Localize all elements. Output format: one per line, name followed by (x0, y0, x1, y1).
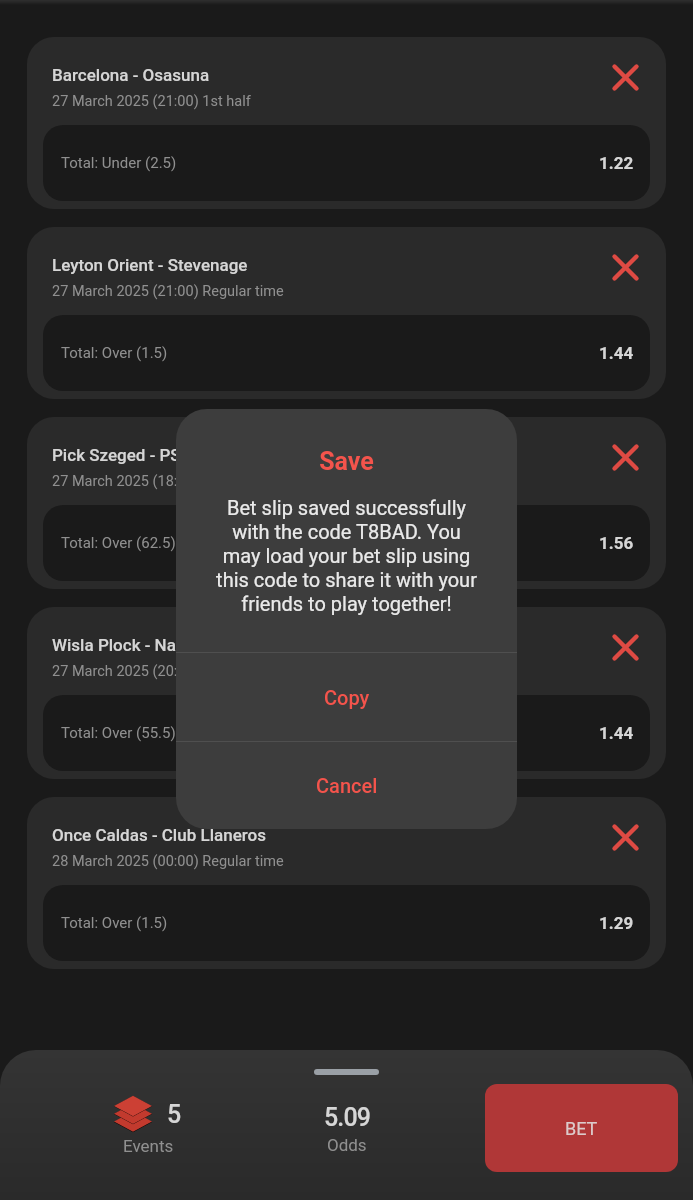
button[interactable]: Wisla Plock - Nantes (27, 607, 666, 779)
staticText: 5.09 (324, 1103, 371, 1132)
button[interactable]: Barcelona - Osasuna (27, 37, 666, 209)
staticText: 1.29 (599, 913, 634, 933)
button[interactable]: Remove bet (603, 625, 647, 669)
staticText: Events (123, 1136, 174, 1156)
staticText: 1.22 (599, 153, 634, 173)
staticText: 28 March 2025 (00:00) Regular time (52, 853, 284, 870)
staticText: 1.44 (599, 723, 634, 743)
staticText: Once Caldas - Club Llaneros (52, 825, 266, 845)
button[interactable]: Total: Over (1.5) (43, 885, 650, 961)
staticText: Bet slip saved successfully with the cod… (214, 496, 479, 616)
button[interactable]: Leyton Orient - Stevenage (27, 227, 666, 399)
staticText: Total: Over (62.5) (61, 534, 176, 552)
staticText: 27 March 2025 (21:00) 1st half (52, 93, 251, 110)
staticText: Pick Szeged - PSG (52, 445, 193, 465)
staticText: Wisla Plock - Nantes (52, 635, 209, 655)
staticText: 27 March 2025 (18:00) Regular time (52, 473, 284, 490)
staticText: Cancel (316, 774, 378, 797)
button[interactable]: BET (485, 1084, 678, 1172)
staticText: Barcelona - Osasuna (52, 65, 210, 85)
staticText: Total: Over (55.5) (61, 724, 176, 742)
button[interactable]: Remove bet (603, 55, 647, 99)
staticText: Total: Over (1.5) (61, 914, 168, 932)
staticText: Leyton Orient - Stevenage (52, 255, 248, 275)
button[interactable]: Once Caldas - Club Llaneros (27, 797, 666, 969)
staticText: Total: Over (1.5) (61, 344, 168, 362)
staticText: 5 (167, 1100, 182, 1129)
button[interactable]: Total: Over (62.5) (43, 505, 650, 581)
button[interactable]: Total: Over (1.5) (43, 315, 650, 391)
button[interactable]: 5 (81, 1095, 215, 1156)
button[interactable]: Copy (176, 653, 517, 741)
staticText: 1.44 (599, 343, 634, 363)
button[interactable]: Remove bet (603, 815, 647, 859)
staticText: Total: Under (2.5) (61, 154, 177, 172)
staticText: 1.56 (599, 533, 634, 553)
staticText: Save (176, 447, 517, 476)
staticText: Odds (327, 1135, 367, 1155)
button[interactable]: Cancel (176, 742, 517, 829)
button[interactable]: Total: Over (55.5) (43, 695, 650, 771)
staticText: Copy (324, 686, 370, 709)
button[interactable]: Remove bet (603, 435, 647, 479)
button[interactable]: 5.09 (280, 1103, 414, 1155)
button[interactable]: Remove bet (603, 245, 647, 289)
staticText: BET (565, 1118, 598, 1139)
staticText: 27 March 2025 (20:45) Regular time (52, 663, 284, 680)
staticText: 27 March 2025 (21:00) Regular time (52, 283, 284, 300)
button[interactable]: Total: Under (2.5) (43, 125, 650, 201)
button[interactable]: Pick Szeged - PSG (27, 417, 666, 589)
